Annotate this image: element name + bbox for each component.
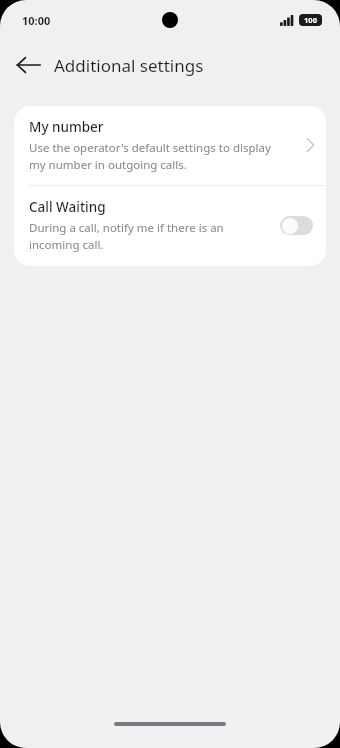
button[interactable]: Call Waiting [14,186,326,266]
button[interactable]: Back [8,45,48,85]
button[interactable]: My number [14,106,326,185]
staticText: Use the operator's default settings to d… [29,140,272,172]
button[interactable]: Call Waiting toggle [280,216,313,235]
staticText: During a call, notify me if there is an … [29,220,244,252]
staticText: Additional settings [54,54,204,77]
staticText: Call Waiting [29,198,106,216]
staticText: 100 [304,15,317,25]
staticText: 10:00 [22,13,51,28]
staticText: My number [29,118,104,136]
